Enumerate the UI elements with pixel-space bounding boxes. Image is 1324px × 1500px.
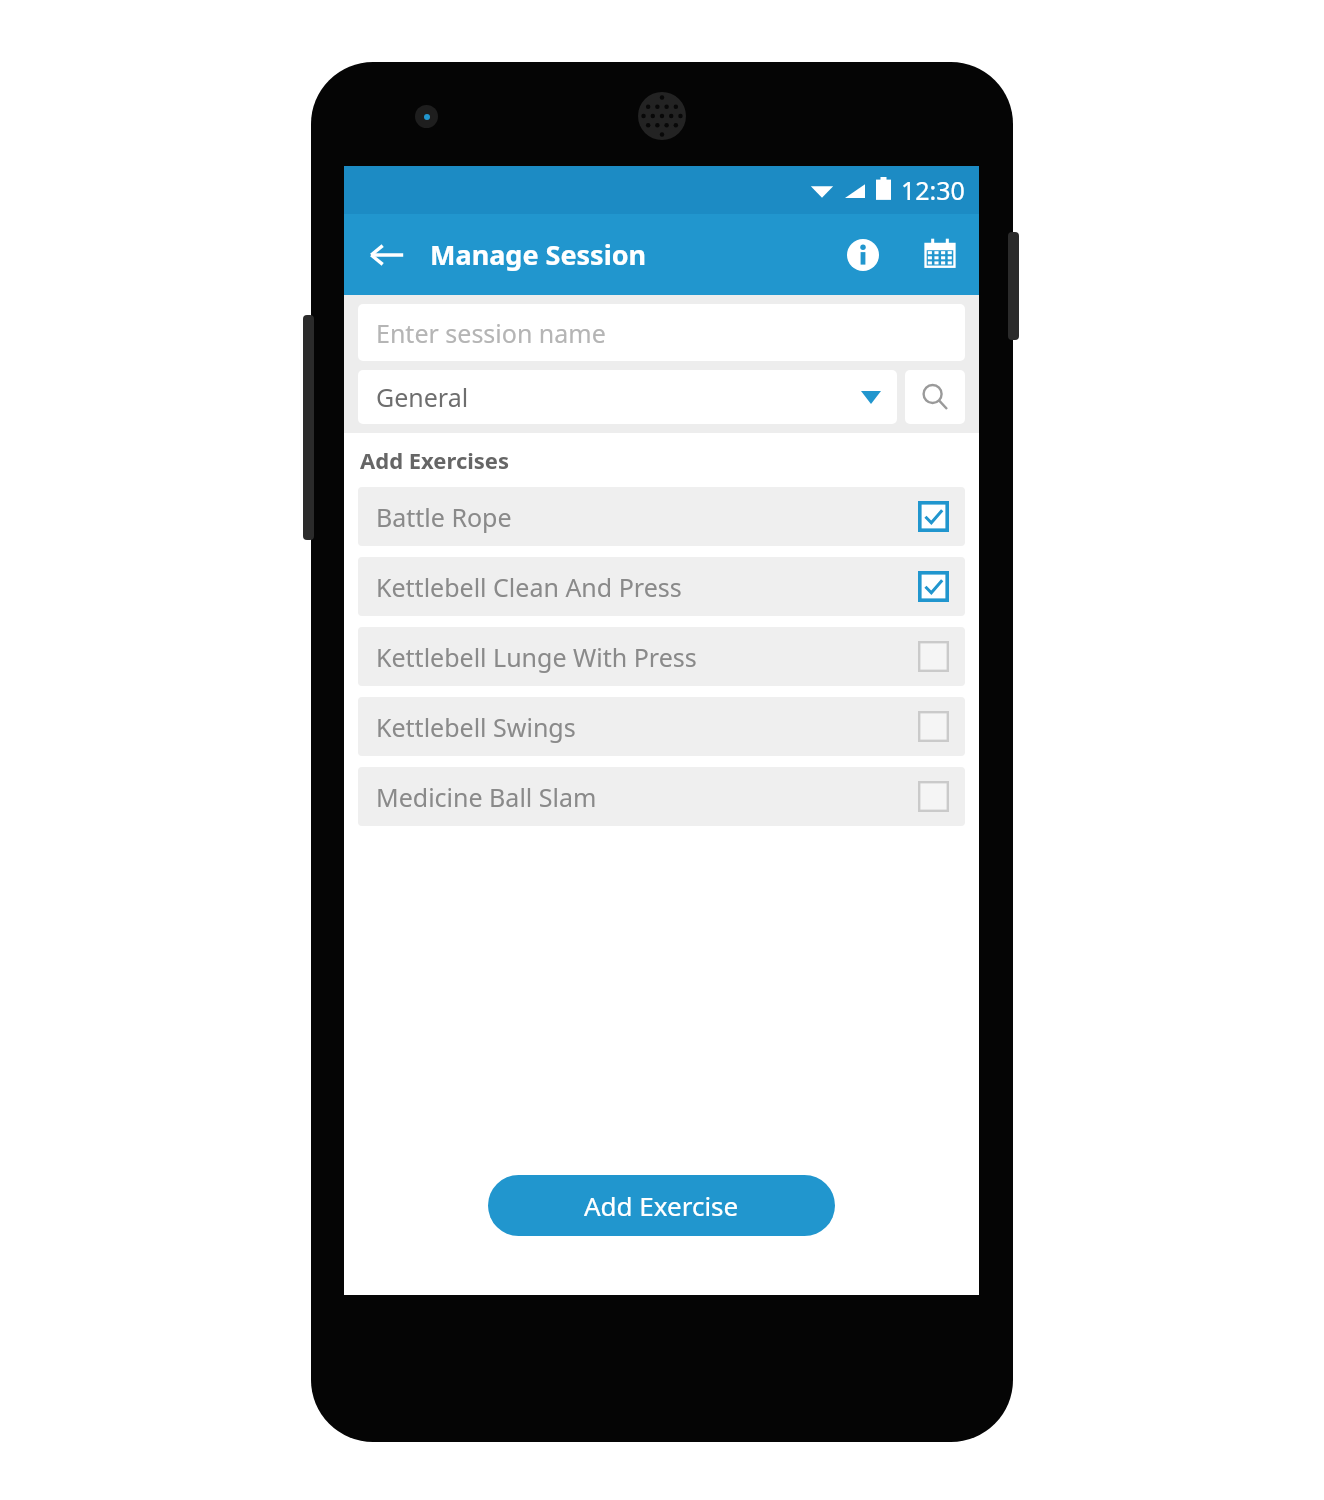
staticText: Kettlebell Clean And Press	[376, 570, 682, 604]
staticText: Battle Rope	[376, 500, 512, 534]
staticText: Medicine Ball Slam	[376, 780, 597, 814]
staticText: General	[376, 380, 469, 414]
staticText: 12:30	[901, 173, 965, 207]
button[interactable]: Enter session name	[358, 304, 965, 361]
staticText: Kettlebell Lunge With Press	[376, 640, 697, 674]
button[interactable]: Search	[905, 370, 965, 424]
button[interactable]: Kettlebell Swings	[358, 697, 965, 756]
button[interactable]: Battle Rope	[358, 487, 965, 546]
button[interactable]: Calendar	[907, 219, 973, 291]
staticText: Manage Session	[430, 236, 647, 273]
button[interactable]: General	[358, 370, 897, 424]
button[interactable]: Medicine Ball Slam	[358, 767, 965, 826]
staticText: Enter session name	[376, 316, 606, 350]
button[interactable]: Kettlebell Clean And Press	[358, 557, 965, 616]
button[interactable]: Add Exercise	[488, 1175, 835, 1236]
staticText: Kettlebell Swings	[376, 710, 576, 744]
button[interactable]: Kettlebell Lunge With Press	[358, 627, 965, 686]
button[interactable]: Back	[344, 214, 430, 295]
staticText: Add Exercises	[360, 445, 510, 475]
button[interactable]: Info	[827, 219, 899, 291]
staticText: Add Exercise	[584, 1188, 739, 1223]
